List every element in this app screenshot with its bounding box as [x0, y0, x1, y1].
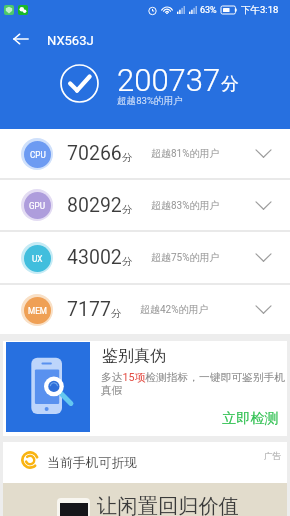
staticText: 超越75%的用户	[151, 251, 220, 264]
button[interactable]: Back	[7, 25, 35, 53]
staticText: 当前手机可折现	[47, 455, 138, 471]
staticText: 分	[122, 151, 133, 164]
staticText: 让闲置回归价值	[97, 493, 240, 516]
staticText: 分	[221, 73, 239, 96]
staticText: UX	[32, 254, 43, 264]
staticText: 分	[111, 307, 122, 320]
staticText: GPU	[29, 201, 46, 211]
staticText: 超越83%的用户	[117, 95, 183, 107]
staticText: 超越42%的用户	[140, 303, 209, 316]
staticText: 43002	[67, 246, 122, 269]
staticText: 广告	[264, 451, 281, 462]
staticText: 立即检测	[222, 409, 279, 427]
button[interactable]: 当前手机可折现	[3, 442, 287, 516]
button[interactable]: GPU	[0, 180, 290, 230]
staticText: NX563J	[47, 33, 94, 48]
button[interactable]: 鉴别真伪	[3, 341, 287, 436]
button[interactable]: MEM	[0, 285, 290, 334]
staticText: 200737	[117, 62, 221, 98]
staticText: 分	[122, 203, 133, 216]
staticText: 70266	[67, 142, 122, 165]
staticText: MEM	[28, 306, 47, 316]
staticText: 80292	[67, 194, 122, 217]
staticText: 分	[122, 255, 133, 268]
button[interactable]: CPU	[0, 129, 290, 178]
staticText: 63%	[200, 5, 217, 16]
staticText: CPU	[30, 150, 46, 160]
staticText: 鉴别真伪	[102, 346, 166, 366]
staticText: 下午3:18	[241, 4, 279, 16]
staticText: 多达15项检测指标，一键即可鉴别手机真假	[101, 371, 288, 398]
staticText: 超越83%的用户	[151, 199, 220, 212]
staticText: 7177	[67, 298, 111, 321]
button[interactable]: UX	[0, 232, 290, 283]
staticText: 超越81%的用户	[151, 147, 220, 160]
